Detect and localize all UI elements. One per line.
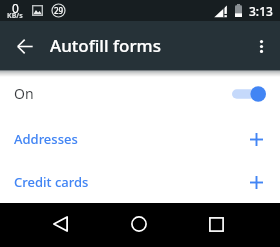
- button[interactable]: Credit cards: [0, 160, 280, 203]
- staticText: On: [14, 84, 34, 103]
- button[interactable]: Recent apps: [194, 203, 239, 247]
- staticText: 3:13: [249, 3, 273, 19]
- staticText: 0: [12, 0, 19, 16]
- button[interactable]: Back: [38, 203, 83, 247]
- button[interactable]: More options: [242, 27, 280, 65]
- other: Add Addresses: [250, 133, 263, 146]
- button[interactable]: Addresses: [0, 117, 280, 160]
- staticText: KB/s: [7, 11, 23, 21]
- staticText: Credit cards: [14, 173, 89, 191]
- staticText: Autofill forms: [50, 34, 161, 57]
- button[interactable]: Back: [4, 25, 46, 67]
- other: Add Credit cards: [250, 176, 263, 189]
- staticText: Addresses: [14, 130, 78, 148]
- button[interactable]: Toggle autofill: [232, 85, 266, 103]
- button[interactable]: On: [0, 72, 280, 115]
- button[interactable]: Home: [116, 203, 161, 247]
- staticText: 29: [54, 5, 64, 16]
